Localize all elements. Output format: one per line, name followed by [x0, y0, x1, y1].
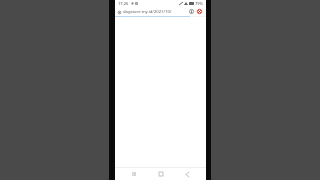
button[interactable]: Page info [188, 8, 195, 15]
button[interactable]: Recent apps [127, 168, 141, 180]
button[interactable]: Stop loading [196, 8, 203, 15]
button[interactable]: dagstore.my.id/2021/10/ [118, 9, 188, 15]
staticText: 79% [195, 1, 203, 6]
staticText: 17:26 [118, 1, 129, 6]
button[interactable]: Home [154, 168, 168, 180]
button[interactable]: Back [180, 168, 194, 180]
staticText: dagstore.my.id/2021/10/ [123, 9, 172, 15]
